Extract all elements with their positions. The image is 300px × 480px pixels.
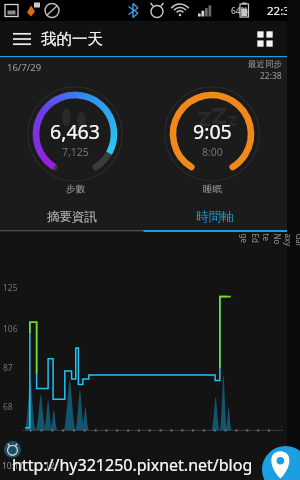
- button[interactable]: Location: [262, 446, 300, 480]
- staticText: 時間軸: [196, 209, 234, 225]
- staticText: 12: [45, 460, 55, 472]
- staticText: 10:11: [2, 460, 24, 472]
- staticText: 106: [3, 323, 18, 335]
- staticText: 22:38: [260, 70, 282, 82]
- button[interactable]: 9:05: [150, 85, 274, 203]
- staticText: 8:00: [202, 145, 223, 159]
- staticText: 步數: [66, 183, 85, 195]
- staticText: 16/7/29: [7, 61, 42, 74]
- staticText: 我的一天: [41, 29, 103, 49]
- staticText: 64%: [231, 5, 248, 17]
- staticText: Hardaway's Galaxy Note Edge: [238, 233, 300, 246]
- button[interactable]: Widgets: [250, 24, 280, 54]
- button[interactable]: 摘要資訊: [0, 203, 143, 230]
- staticText: 最近同步: [248, 59, 282, 70]
- staticText: 125: [3, 282, 18, 294]
- staticText: http://hy321250.pixnet.net/blog: [12, 454, 253, 476]
- button[interactable]: Menu: [6, 23, 38, 55]
- staticText: 睡眠: [203, 183, 222, 195]
- staticText: 68: [3, 401, 13, 413]
- button[interactable]: 6,463: [13, 85, 137, 203]
- staticText: 22:38: [267, 3, 297, 19]
- staticText: 87: [3, 362, 13, 374]
- staticText: 9:05: [193, 118, 232, 145]
- staticText: 7,125: [62, 145, 89, 159]
- button[interactable]: 時間軸: [143, 203, 287, 230]
- staticText: 6,463: [50, 118, 100, 145]
- staticText: 23: [272, 460, 282, 472]
- staticText: 摘要資訊: [47, 209, 97, 225]
